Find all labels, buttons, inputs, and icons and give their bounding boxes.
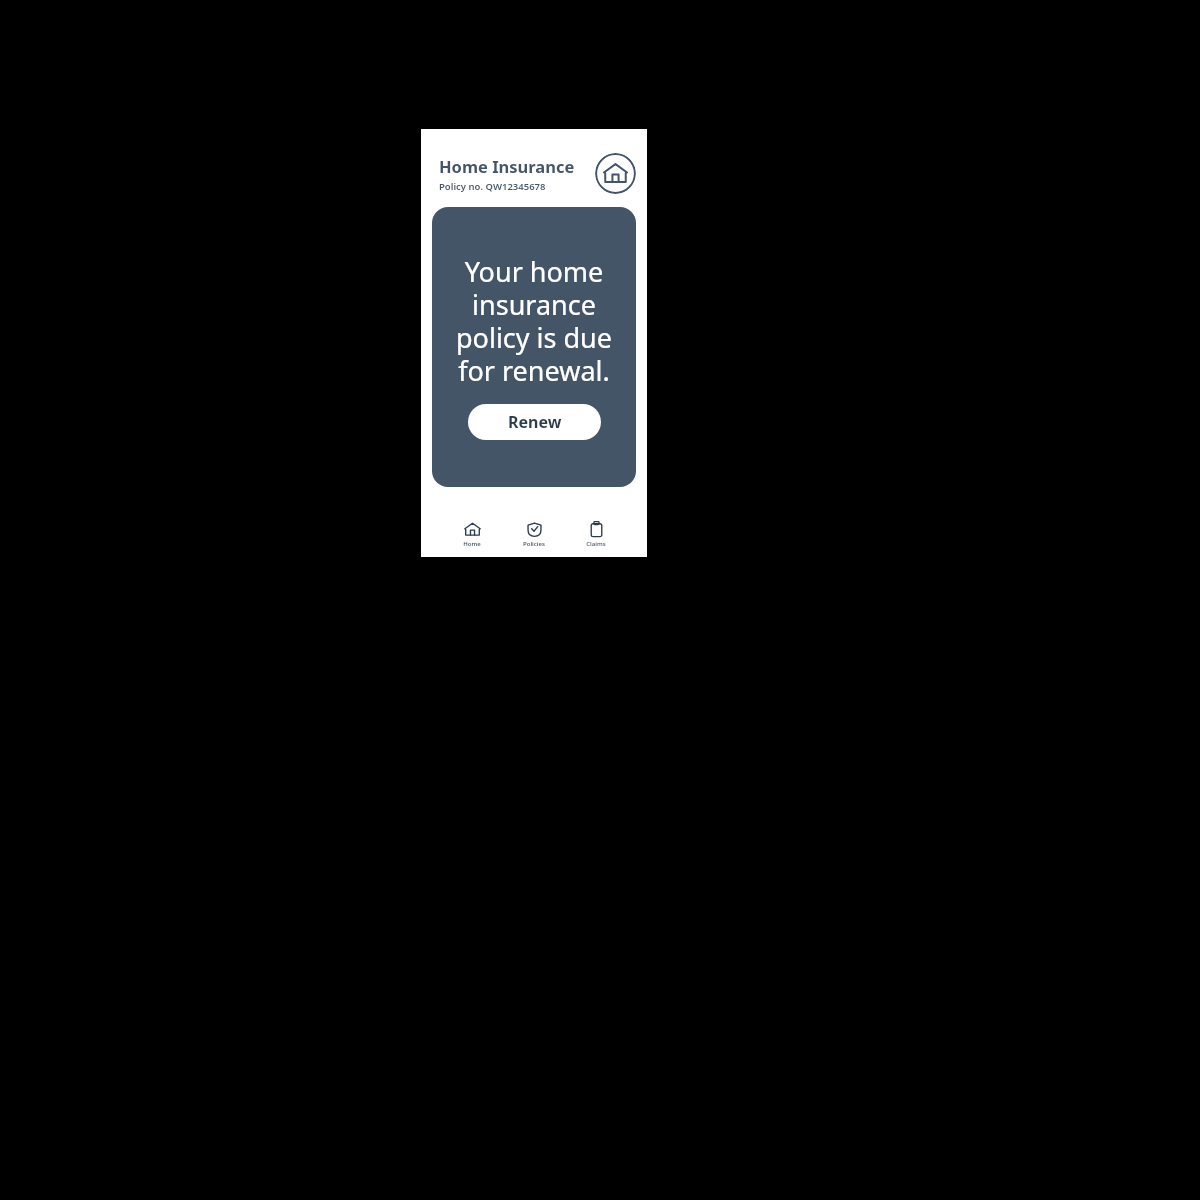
staticText: Policy no. QW12345678 [439,180,546,193]
staticText: Home Insurance [439,155,575,177]
staticText: Policies [523,540,545,548]
button[interactable]: Home [595,153,636,194]
button[interactable]: Claims [575,519,617,550]
button[interactable]: Your home insurance policy is due for re… [432,207,636,487]
staticText: Claims [586,540,606,548]
button[interactable]: Home [451,519,493,550]
staticText: Renew [508,411,562,433]
staticText: Your home insurance policy is due for re… [446,253,622,389]
button[interactable]: Policies [513,519,555,550]
staticText: Home [463,540,481,548]
button[interactable]: Renew [468,404,601,440]
